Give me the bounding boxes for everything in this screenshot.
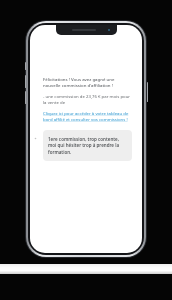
staticText: Cliquez ici pour accéder à votre tableau… [43, 110, 132, 122]
button[interactable]: 1ere commission, trop contente, moi qui … [43, 130, 132, 161]
button[interactable]: Cliquez ici pour accéder à votre tableau… [43, 110, 132, 122]
staticText: Félicitations ! Vous avez gagné une nouv… [43, 76, 132, 88]
other: Device notch [56, 25, 117, 35]
staticText: - une commission de 23,76 € par mois pou… [43, 93, 132, 105]
staticText: 1ere commission, trop contente, moi qui … [48, 136, 127, 155]
